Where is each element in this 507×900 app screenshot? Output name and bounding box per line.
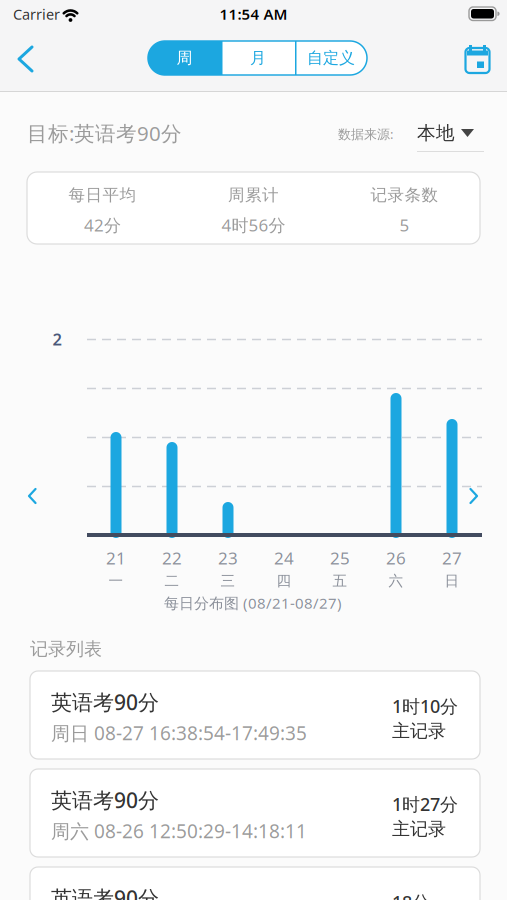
staticText: 42分 [84,214,121,236]
staticText: 21 [106,547,126,569]
staticText: 记录条数 [370,185,438,205]
staticText: 26 [386,547,406,569]
staticText: 周日 08-27 16:38:54-17:49:35 [51,720,307,746]
button[interactable]: 英语考90分 [30,671,480,759]
staticText: 每日平均 [68,185,136,205]
staticText: 本地 [417,122,455,144]
staticText: 记录列表 [30,638,102,660]
staticText: 四 [276,572,291,590]
staticText: 周累计 [228,185,279,205]
button[interactable]: 自定义 [295,41,367,75]
staticText: 22 [162,547,182,569]
staticText: 月 [250,48,266,68]
staticText: 18分 [392,890,430,900]
staticText: 三 [220,572,235,590]
button[interactable]: Calendar [464,45,490,73]
staticText: 一 [108,572,123,590]
staticText: 11:54 AM [219,4,287,24]
staticText: 4时56分 [221,214,285,236]
staticText: 每日分布图 (08/21-08/27) [164,593,342,613]
staticText: 25 [330,547,350,569]
staticText: 五 [332,572,347,590]
staticText: 5 [399,214,409,236]
staticText: 数据来源: [338,125,393,143]
staticText: 23 [218,547,238,569]
staticText: 六 [388,572,403,590]
staticText: 自定义 [307,48,355,68]
staticText: 日 [444,572,459,590]
staticText: 1时27分 [392,792,458,816]
staticText: 24 [274,547,294,569]
staticText: 目标:英语考90分 [27,119,182,147]
staticText: 27 [442,547,462,569]
button[interactable]: 下一周 [462,485,482,507]
staticText: 英语考90分 [51,786,159,814]
button[interactable]: 上一周 [24,485,44,507]
staticText: 2 [52,328,61,350]
staticText: Carrier [13,4,60,24]
staticText: 主记录 [392,818,446,840]
staticText: 英语考90分 [51,688,159,716]
button[interactable]: 月 [221,41,295,75]
button[interactable]: 周 [148,41,221,75]
button[interactable]: 英语考90分 [30,769,480,857]
staticText: 1时10分 [392,694,458,718]
staticText: 周 [176,48,192,68]
button[interactable]: 英语考90分 [30,867,480,900]
staticText: 英语考90分 [51,884,159,900]
button[interactable]: Back [10,40,46,78]
staticText: 二 [164,572,179,590]
staticText: 主记录 [392,720,446,742]
staticText: 周六 08-26 12:50:29-14:18:11 [51,818,307,844]
button[interactable]: 数据来源 本地 [417,120,484,152]
